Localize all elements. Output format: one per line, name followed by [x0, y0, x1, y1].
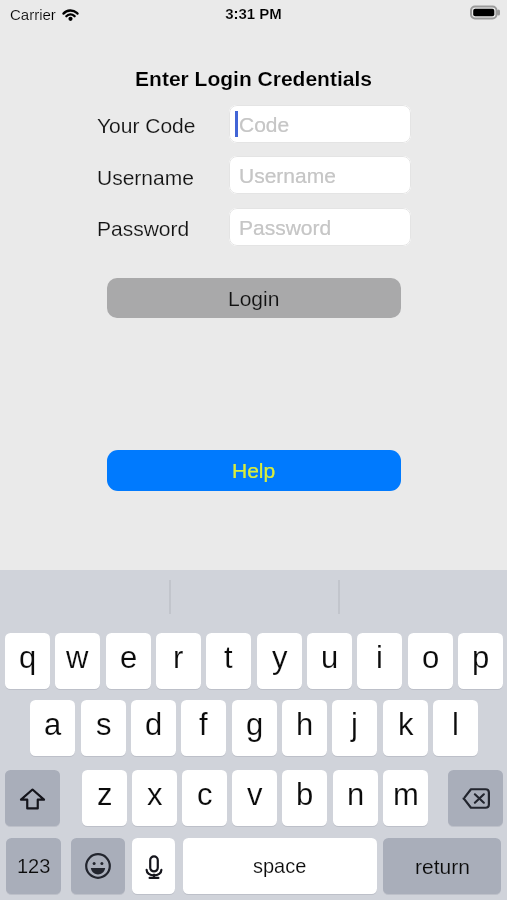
staticText: e	[120, 640, 138, 675]
button[interactable]: j	[332, 700, 377, 757]
staticText: 3:31 PM	[0, 5, 507, 22]
staticText: Username	[97, 166, 194, 189]
staticText: b	[296, 777, 314, 812]
staticText: k	[398, 707, 414, 742]
button[interactable]: p	[458, 633, 503, 690]
staticText: return	[415, 855, 470, 878]
staticText: Enter Login Credentials	[0, 67, 507, 90]
staticText: space	[253, 855, 307, 877]
button[interactable]: t	[206, 633, 251, 690]
button[interactable]: Shift	[5, 770, 60, 827]
button[interactable]: u	[307, 633, 352, 690]
staticText: n	[347, 777, 365, 812]
button[interactable]: Password	[229, 208, 411, 246]
button[interactable]: w	[55, 633, 100, 690]
button[interactable]: Help	[107, 450, 401, 491]
button[interactable]: Dictation	[132, 838, 175, 895]
button[interactable]: v	[232, 770, 277, 827]
button[interactable]: c	[182, 770, 227, 827]
staticText: w	[66, 640, 89, 675]
button[interactable]: space	[183, 838, 377, 895]
button[interactable]: n	[333, 770, 378, 827]
staticText: r	[173, 640, 184, 675]
button[interactable]: o	[408, 633, 453, 690]
staticText: Username	[239, 164, 336, 187]
button[interactable]: g	[232, 700, 277, 757]
button[interactable]: Code	[229, 105, 411, 143]
staticText: Carrier	[10, 6, 56, 23]
button[interactable]: m	[383, 770, 428, 827]
button[interactable]: f	[181, 700, 226, 757]
staticText: Login	[228, 287, 280, 310]
staticText: c	[197, 777, 213, 812]
staticText: t	[224, 640, 233, 675]
staticText: p	[472, 640, 490, 675]
button[interactable]: y	[257, 633, 302, 690]
staticText: q	[19, 640, 37, 675]
staticText: g	[246, 707, 264, 742]
button[interactable]: Backspace	[448, 770, 503, 827]
button[interactable]: i	[357, 633, 402, 690]
staticText: j	[351, 707, 358, 742]
button[interactable]: Emoji	[71, 838, 125, 895]
staticText: d	[145, 707, 163, 742]
button[interactable]: return	[383, 838, 501, 895]
staticText: Your Code	[97, 114, 196, 137]
staticText: o	[422, 640, 440, 675]
button[interactable]: r	[156, 633, 201, 690]
staticText: 123	[17, 855, 51, 877]
button[interactable]: Username	[229, 156, 411, 194]
staticText: h	[296, 707, 314, 742]
button[interactable]: k	[383, 700, 428, 757]
button[interactable]: 123	[6, 838, 61, 895]
staticText: Code	[239, 113, 290, 136]
staticText: Help	[232, 459, 276, 482]
button[interactable]: b	[282, 770, 327, 827]
staticText: a	[44, 707, 62, 742]
button[interactable]: a	[30, 700, 75, 757]
button[interactable]: Login	[107, 278, 401, 318]
button[interactable]: z	[82, 770, 127, 827]
staticText: l	[452, 707, 459, 742]
staticText: Password	[239, 216, 332, 239]
button[interactable]: e	[106, 633, 151, 690]
button[interactable]: x	[132, 770, 177, 827]
staticText: m	[393, 777, 419, 812]
button[interactable]: d	[131, 700, 176, 757]
staticText: s	[96, 707, 112, 742]
staticText: i	[376, 640, 383, 675]
staticText: y	[272, 640, 288, 675]
button[interactable]: s	[81, 700, 126, 757]
button[interactable]: h	[282, 700, 327, 757]
staticText: f	[199, 707, 208, 742]
staticText: x	[147, 777, 163, 812]
staticText: v	[247, 777, 263, 812]
staticText: z	[97, 777, 113, 812]
button[interactable]: q	[5, 633, 50, 690]
button[interactable]: l	[433, 700, 478, 757]
staticText: u	[321, 640, 339, 675]
staticText: Password	[97, 217, 190, 240]
